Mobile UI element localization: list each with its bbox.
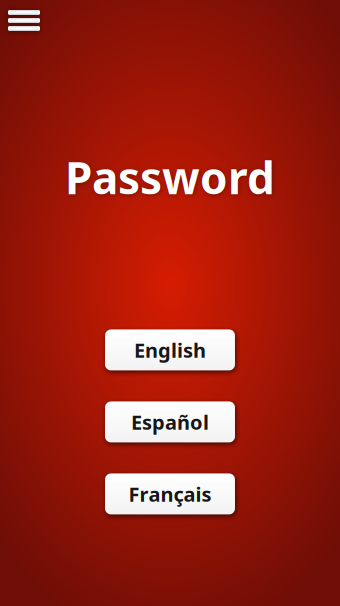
button[interactable]: Français	[105, 473, 235, 514]
staticText: Français	[128, 481, 211, 507]
button[interactable]: English	[105, 329, 235, 370]
button[interactable]: Español	[105, 401, 235, 442]
staticText: Password	[65, 148, 275, 206]
button[interactable]: Menu	[3, 5, 45, 36]
staticText: Español	[131, 409, 209, 435]
staticText: English	[134, 337, 206, 363]
